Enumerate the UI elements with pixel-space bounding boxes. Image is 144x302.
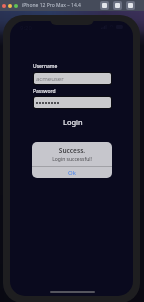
staticText: Password (33, 88, 56, 95)
button[interactable]: acmeuser (34, 73, 111, 84)
button[interactable]: Ok (32, 167, 112, 178)
button[interactable] (34, 97, 111, 108)
staticText: iPhone 12 Pro Max – 14.4 (22, 2, 81, 9)
button[interactable]: Screenshot (100, 1, 109, 10)
button[interactable]: Home (113, 1, 122, 10)
staticText: Login (63, 117, 83, 127)
button[interactable]: Login (33, 115, 112, 129)
staticText: acmeuser (36, 75, 64, 83)
button[interactable]: Rotate (126, 1, 135, 10)
staticText: Login successful! (32, 156, 112, 163)
staticText: Ok (68, 169, 76, 177)
staticText: Username (33, 63, 58, 70)
staticText: Success. (32, 146, 112, 155)
